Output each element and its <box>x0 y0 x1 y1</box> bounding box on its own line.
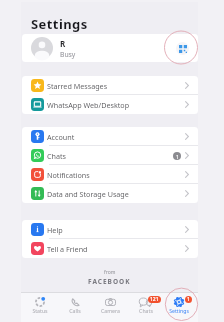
staticText: Notifications <box>47 170 90 180</box>
staticText: from <box>104 269 116 276</box>
staticText: FACEBOOK <box>88 277 131 286</box>
button[interactable]: R <box>22 34 198 62</box>
staticText: 121 <box>150 296 159 303</box>
button[interactable]: 121 <box>128 293 163 314</box>
staticText: Help <box>47 225 63 235</box>
staticText: R <box>60 38 66 49</box>
button[interactable]: Show QR code <box>176 42 189 55</box>
button[interactable]: Notifications <box>22 165 198 184</box>
staticText: Settings <box>31 15 88 33</box>
staticText: WhatsApp Web/Desktop <box>47 100 130 110</box>
button[interactable]: Help <box>22 220 198 239</box>
button[interactable]: Camera <box>93 293 128 314</box>
staticText: Account <box>47 132 75 142</box>
button[interactable]: Tell a Friend <box>22 239 198 258</box>
staticText: Starred Messages <box>47 81 108 91</box>
staticText: 1 <box>187 296 190 303</box>
button[interactable]: Starred Messages <box>22 76 198 95</box>
staticText: Chats <box>47 151 67 161</box>
staticText: Status <box>32 307 48 314</box>
staticText: Settings <box>169 307 189 314</box>
staticText: Tell a Friend <box>47 244 88 254</box>
staticText: Data and Storage Usage <box>47 189 129 199</box>
button[interactable]: 1 <box>161 293 196 314</box>
button[interactable]: Chats <box>22 146 198 165</box>
staticText: Chats <box>139 307 153 314</box>
staticText: Calls <box>69 307 81 314</box>
staticText: 1 <box>176 153 179 160</box>
button[interactable]: WhatsApp Web/Desktop <box>22 95 198 114</box>
button[interactable]: Status <box>22 293 58 314</box>
button[interactable]: Account <box>22 127 198 146</box>
button[interactable]: Data and Storage Usage <box>22 184 198 203</box>
staticText: Camera <box>101 307 120 314</box>
staticText: Busy <box>60 50 76 59</box>
button[interactable]: Calls <box>57 293 93 314</box>
